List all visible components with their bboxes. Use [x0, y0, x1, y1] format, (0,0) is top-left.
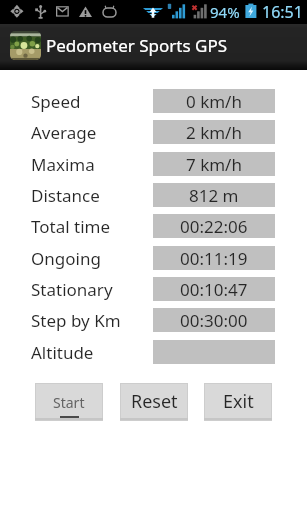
- button[interactable]: Step by Km: [0, 308, 307, 332]
- staticText: Average: [31, 121, 97, 144]
- staticText: Altitude: [31, 341, 94, 364]
- staticText: Step by Km: [31, 309, 121, 332]
- staticText: Ongoing: [31, 247, 101, 270]
- staticText: 7 km/h: [186, 153, 242, 176]
- staticText: Total time: [31, 215, 111, 238]
- button[interactable]: Stationary: [0, 277, 307, 301]
- button[interactable]: Total time: [0, 214, 307, 238]
- button[interactable]: Average: [0, 120, 307, 144]
- staticText: 812 m: [189, 184, 239, 207]
- staticText: Pedometer Sports GPS: [46, 34, 228, 57]
- button[interactable]: Maxima: [0, 152, 307, 176]
- button[interactable]: Exit: [204, 383, 272, 421]
- staticText: Exit: [223, 389, 254, 414]
- button[interactable]: Distance: [0, 183, 307, 207]
- staticText: 16:51: [262, 1, 303, 23]
- staticText: 0 km/h: [186, 90, 242, 113]
- staticText: 00:30:00: [180, 309, 248, 332]
- staticText: 00:11:19: [180, 247, 248, 270]
- staticText: 00:22:06: [180, 215, 248, 238]
- staticText: 94%: [210, 2, 240, 22]
- staticText: Speed: [31, 90, 81, 113]
- staticText: 2 km/h: [186, 121, 242, 144]
- staticText: 00:10:47: [180, 278, 248, 301]
- button[interactable]: Altitude: [0, 340, 307, 364]
- staticText: Maxima: [31, 153, 95, 176]
- button[interactable]: Reset: [120, 383, 188, 421]
- staticText: Reset: [131, 389, 178, 414]
- staticText: Distance: [31, 184, 100, 207]
- button[interactable]: Ongoing: [0, 246, 307, 270]
- button[interactable]: Speed: [0, 89, 307, 113]
- button[interactable]: Start: [35, 383, 103, 421]
- staticText: Stationary: [31, 278, 113, 301]
- staticText: Start: [53, 393, 85, 412]
